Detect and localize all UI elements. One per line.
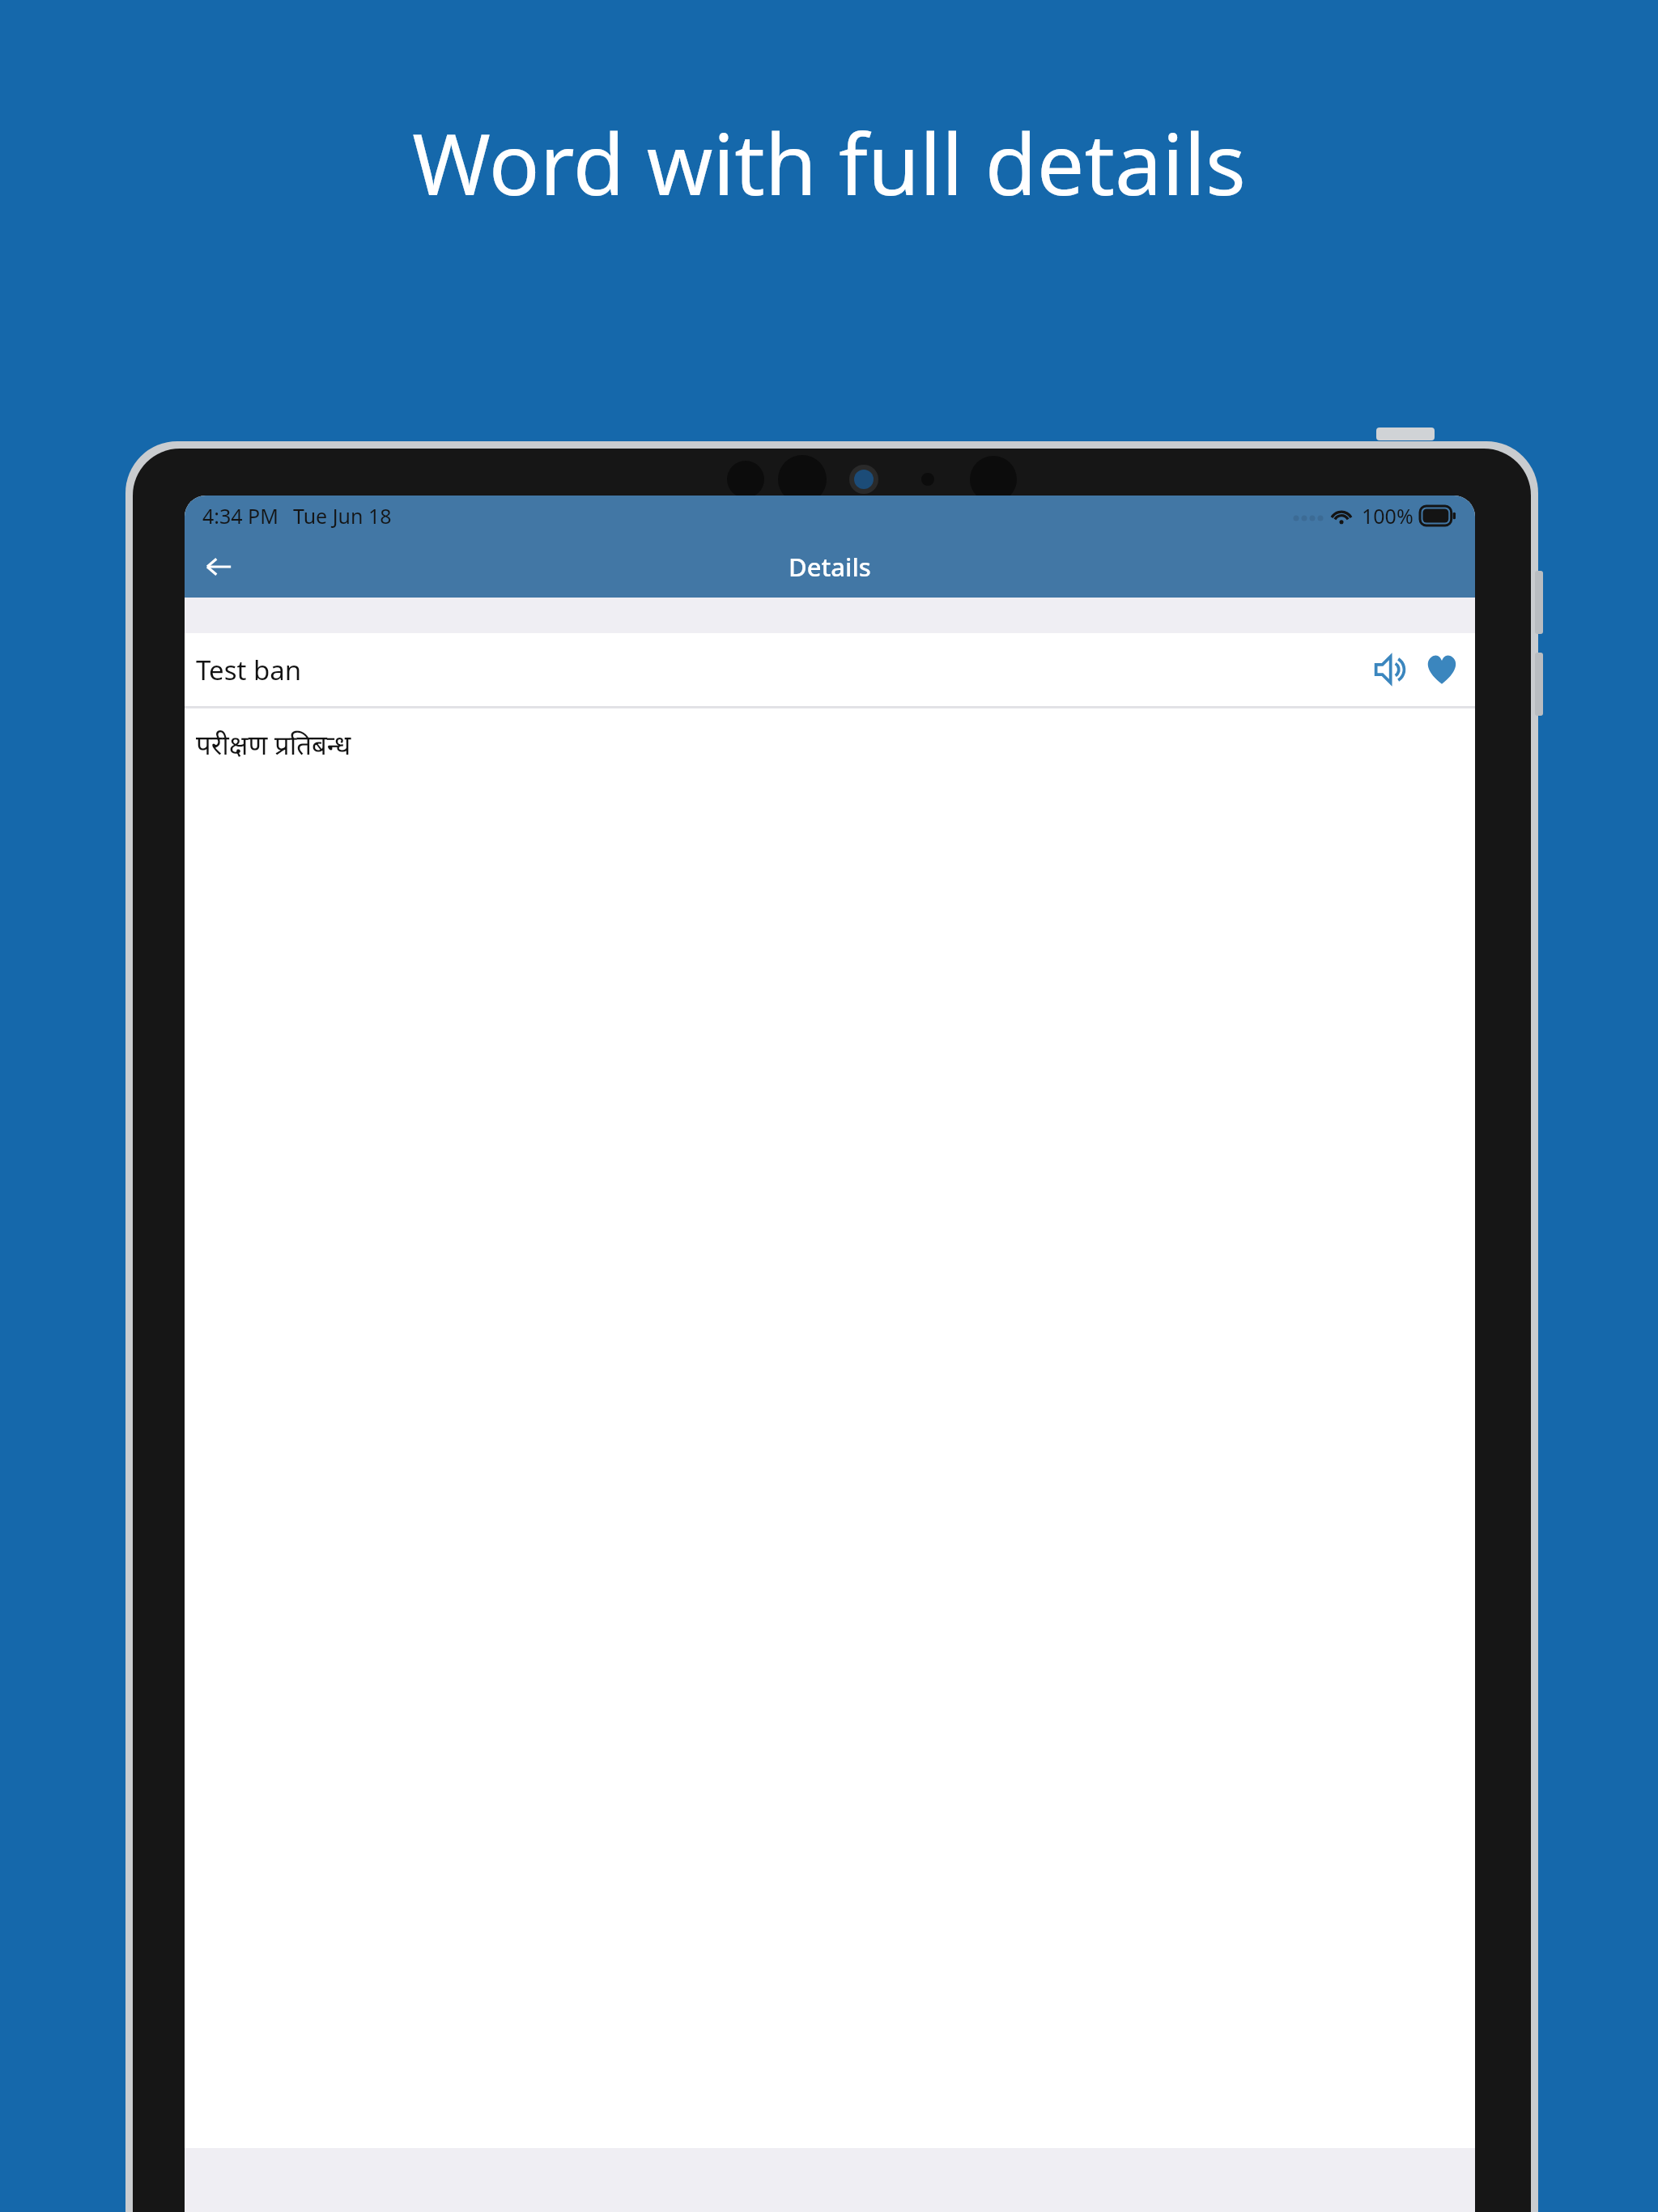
staticText: Word with full details (412, 105, 1246, 220)
staticText: Tue Jun 18 (293, 502, 392, 530)
button[interactable]: Pronounce (1368, 646, 1415, 693)
button[interactable]: Favorite (1418, 646, 1465, 693)
button[interactable]: Test ban (185, 633, 1475, 706)
staticText: Test ban (196, 652, 302, 688)
button[interactable]: Back (193, 541, 244, 593)
button[interactable]: परीक्षण प्रतिबन्ध (185, 708, 1475, 780)
staticText: 100% (1362, 502, 1414, 530)
staticText: परीक्षण प्रतिबन्ध (196, 726, 351, 763)
staticText: 4:34 PM (202, 502, 278, 530)
staticText: Details (789, 550, 871, 584)
